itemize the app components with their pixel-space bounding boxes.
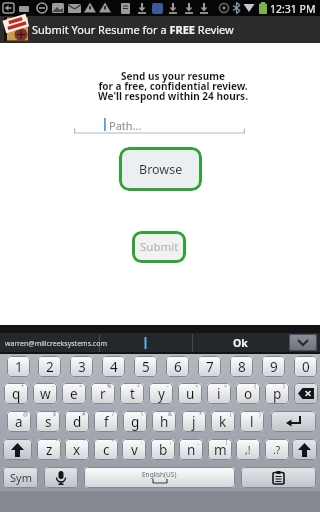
staticText: 8 <box>238 358 246 376</box>
staticText: j <box>192 413 196 431</box>
staticText: k <box>219 413 227 431</box>
button[interactable]: o <box>236 383 260 404</box>
staticText: English(US) <box>142 470 177 479</box>
staticText: < <box>195 383 199 389</box>
staticText: Send us your resume for a free, confiden… <box>98 69 248 103</box>
button[interactable]: b <box>151 439 175 460</box>
button[interactable]: g <box>123 411 147 432</box>
button[interactable]: c <box>94 439 118 460</box>
staticText: # <box>82 411 86 417</box>
button[interactable]: y <box>149 383 173 404</box>
button[interactable] <box>292 439 317 460</box>
staticText: g <box>131 413 140 431</box>
staticText: a <box>15 413 23 431</box>
button[interactable]: ,! <box>236 439 260 460</box>
staticText: u <box>186 385 195 403</box>
staticText: $ <box>53 411 57 417</box>
button[interactable]: 6 <box>166 356 189 377</box>
staticText: | <box>225 439 229 445</box>
button[interactable]: z <box>37 439 61 460</box>
button[interactable] <box>44 467 78 488</box>
button[interactable]: 5 <box>134 356 157 377</box>
staticText: c <box>103 441 110 459</box>
button[interactable]: Submit Your Resume for a FREE Review <box>0 16 320 43</box>
button[interactable]: 3 <box>70 356 93 377</box>
button[interactable]: n <box>179 439 203 460</box>
button[interactable]: 1 <box>7 356 30 377</box>
staticText: m <box>214 441 227 459</box>
button[interactable]: Ok <box>193 333 288 352</box>
staticText: e <box>70 385 78 403</box>
button[interactable]: Sym <box>3 467 38 488</box>
button[interactable]: h <box>152 411 176 432</box>
button[interactable]: d <box>65 411 89 432</box>
staticText: 6 <box>174 358 182 376</box>
button[interactable] <box>241 467 316 488</box>
button[interactable]: s <box>36 411 60 432</box>
staticText: Ok <box>233 336 248 350</box>
staticText: i <box>217 385 221 403</box>
staticText: t <box>130 385 135 403</box>
staticText: { <box>254 383 257 389</box>
button[interactable]: 4 <box>102 356 125 377</box>
staticText: @ <box>23 411 28 417</box>
button[interactable]: .? <box>265 439 289 460</box>
button[interactable]: v <box>122 439 146 460</box>
button[interactable]: p <box>265 383 289 404</box>
button[interactable]: j <box>182 411 206 432</box>
staticText: ~ <box>166 383 170 389</box>
button[interactable]: r <box>91 383 115 404</box>
button[interactable]: Browse <box>119 147 202 191</box>
button[interactable]: x <box>65 439 89 460</box>
button[interactable]: i <box>207 383 231 404</box>
button[interactable]: u <box>178 383 202 404</box>
button[interactable]: 2 <box>38 356 61 377</box>
button[interactable]: f <box>94 411 118 432</box>
button[interactable]: w <box>33 383 57 404</box>
button[interactable]: 7 <box>198 356 221 377</box>
staticText: 3 <box>78 358 86 376</box>
button[interactable] <box>271 411 316 432</box>
button[interactable]: 0 <box>294 356 317 377</box>
staticText: ' <box>84 439 86 445</box>
staticText: * <box>199 411 203 417</box>
staticText: warren@millcreeksystems.com <box>5 339 108 349</box>
staticText: / <box>112 411 115 417</box>
staticText: p <box>273 385 282 403</box>
button[interactable]: e <box>62 383 86 404</box>
staticText: b <box>159 441 168 459</box>
staticText: & <box>168 411 173 417</box>
button[interactable]: a <box>7 411 31 432</box>
staticText: v <box>131 441 138 459</box>
staticText: \ <box>141 411 144 417</box>
button[interactable]: 8 <box>230 356 253 377</box>
staticText: ( <box>230 411 232 417</box>
staticText: o <box>244 385 253 403</box>
button[interactable]: m <box>208 439 232 460</box>
staticText: 9 <box>270 358 278 376</box>
staticText: 1 <box>15 358 23 376</box>
staticText: s <box>45 413 52 431</box>
staticText: 2 <box>46 358 54 376</box>
staticText: = <box>79 383 83 389</box>
staticText: n <box>187 441 196 459</box>
button[interactable]: English(US) <box>84 467 235 488</box>
button[interactable]: k <box>211 411 235 432</box>
button[interactable]: q <box>4 383 28 404</box>
staticText: 0 <box>302 358 310 376</box>
staticText: y <box>158 385 165 403</box>
staticText: Browse <box>139 161 183 178</box>
button[interactable] <box>3 439 32 460</box>
staticText: .? <box>273 443 281 457</box>
button[interactable] <box>294 383 318 404</box>
button[interactable]: t <box>120 383 144 404</box>
staticText: % <box>107 383 112 389</box>
button[interactable]: l <box>240 411 264 432</box>
staticText: q <box>12 385 21 403</box>
button[interactable]: Path... <box>74 112 245 134</box>
staticText: h <box>160 413 169 431</box>
staticText: 5 <box>142 358 150 376</box>
button[interactable]: Submit <box>132 231 186 263</box>
button[interactable] <box>289 334 317 351</box>
button[interactable]: 9 <box>262 356 285 377</box>
